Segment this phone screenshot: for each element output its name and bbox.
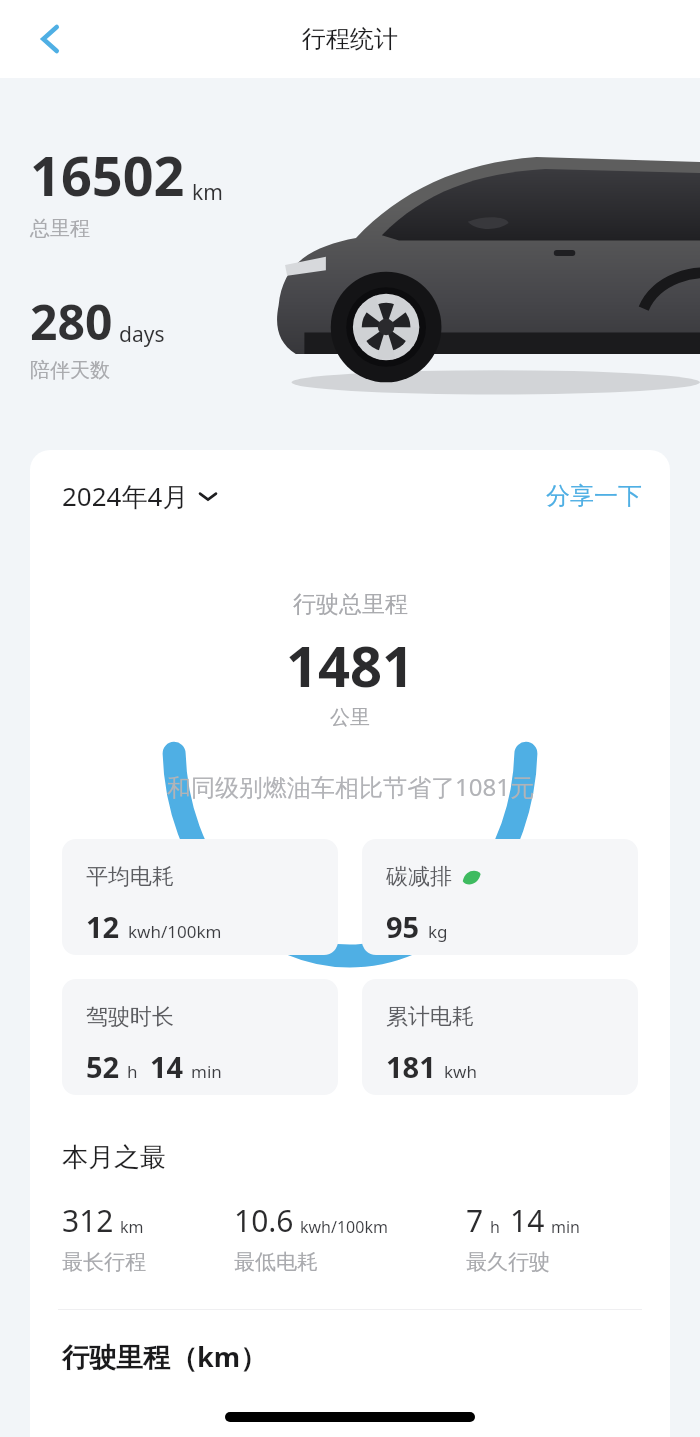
staticText: 10.6 [234, 1200, 294, 1241]
staticText: 280 [30, 289, 113, 354]
staticText: km [192, 178, 223, 207]
staticText: 碳减排 [386, 863, 452, 891]
staticText: 95 [386, 907, 420, 946]
staticText: 14 [510, 1200, 545, 1241]
staticText: 1481 [286, 627, 415, 703]
button[interactable]: 累计电耗 [362, 979, 638, 1095]
staticText: 14 [150, 1047, 184, 1086]
staticText: 平均电耗 [86, 863, 174, 891]
staticText: 和同级别燃油车相比节省了1081元 [167, 770, 534, 803]
staticText: 分享一下 [546, 481, 642, 511]
staticText: 312 [62, 1200, 114, 1241]
staticText: 2024年4月 [62, 478, 189, 514]
staticText: kg [428, 920, 448, 943]
staticText: h [127, 1060, 138, 1083]
staticText: 52 [86, 1047, 120, 1086]
staticText: 7 [466, 1200, 484, 1241]
button[interactable]: 分享一下 [546, 477, 642, 515]
button[interactable]: Back [22, 11, 78, 67]
staticText: 行程统计 [302, 24, 398, 54]
button[interactable]: 碳减排 [362, 839, 638, 955]
staticText: 181 [386, 1047, 436, 1086]
staticText: min [191, 1060, 222, 1083]
staticText: min [551, 1216, 580, 1238]
staticText: 公里 [330, 705, 370, 730]
staticText: days [119, 320, 165, 349]
button[interactable]: 平均电耗 [62, 839, 338, 955]
staticText: 总里程 [30, 216, 90, 241]
staticText: 陪伴天数 [30, 358, 110, 383]
button[interactable]: 2024年4月 [62, 474, 218, 518]
staticText: 累计电耗 [386, 1003, 474, 1031]
button[interactable]: 驾驶时长 [62, 979, 338, 1095]
staticText: kwh [444, 1060, 477, 1083]
staticText: h [490, 1216, 500, 1238]
staticText: 驾驶时长 [86, 1003, 174, 1031]
staticText: 最长行程 [62, 1249, 146, 1275]
staticText: 12 [86, 907, 120, 946]
staticText: 最低电耗 [234, 1249, 318, 1275]
staticText: 行驶总里程 [293, 590, 408, 619]
staticText: 最久行驶 [466, 1249, 550, 1275]
staticText: kwh/100km [128, 920, 222, 943]
staticText: kwh/100km [300, 1216, 388, 1238]
staticText: 本月之最 [62, 1141, 166, 1174]
staticText: km [120, 1216, 144, 1238]
staticText: 行驶里程（km） [62, 1338, 268, 1375]
staticText: 16502 [30, 138, 185, 212]
